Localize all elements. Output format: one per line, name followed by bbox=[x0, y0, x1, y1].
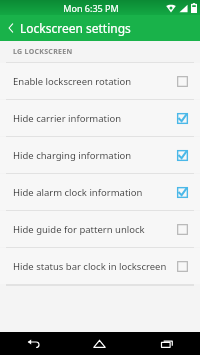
staticText: LG LOCKSCREEN bbox=[13, 47, 73, 57]
button[interactable]: Hide alarm clock information bbox=[0, 174, 200, 210]
button[interactable]: Back bbox=[0, 15, 200, 41]
other: Back bbox=[5, 22, 17, 34]
button[interactable]: Hide status bar clock in lockscreen bbox=[0, 248, 200, 284]
button[interactable]: Hide carrier information bbox=[0, 100, 200, 136]
staticText: Hide guide for pattern unlock bbox=[13, 223, 177, 236]
staticText: Lockscreen settings bbox=[20, 20, 131, 36]
staticText: Mon 6:35 PM bbox=[63, 2, 119, 14]
staticText: Hide status bar clock in lockscreen bbox=[13, 260, 177, 273]
staticText: Hide alarm clock information bbox=[13, 186, 177, 199]
button[interactable]: Enable lockscreen rotation bbox=[0, 63, 200, 99]
button[interactable]: Hide guide for pattern unlock bbox=[0, 211, 200, 247]
button[interactable]: Back bbox=[0, 332, 66, 355]
staticText: Enable lockscreen rotation bbox=[13, 75, 177, 88]
button[interactable]: Hide charging information bbox=[0, 137, 200, 173]
button[interactable]: Home bbox=[66, 332, 133, 355]
staticText: Hide charging information bbox=[13, 149, 177, 162]
staticText: Hide carrier information bbox=[13, 112, 177, 125]
button[interactable]: Recents bbox=[133, 332, 200, 355]
